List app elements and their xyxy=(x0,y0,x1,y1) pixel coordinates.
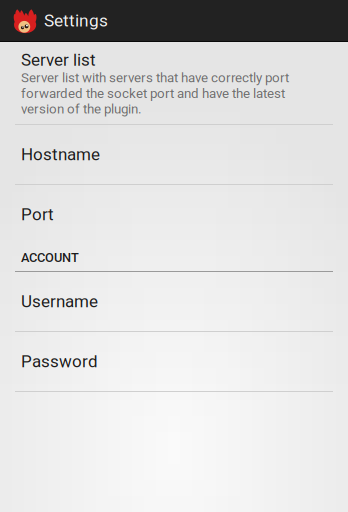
button[interactable]: Password xyxy=(0,332,348,391)
button[interactable]: Hostname xyxy=(0,125,348,184)
staticText: ACCOUNT xyxy=(21,250,79,265)
staticText: Port xyxy=(21,204,54,224)
button[interactable]: Server list xyxy=(0,42,348,124)
button[interactable]: Port xyxy=(0,185,348,244)
staticText: Settings xyxy=(44,10,108,31)
staticText: Server list xyxy=(21,50,96,70)
staticText: Server list with servers that have corre… xyxy=(21,70,289,117)
staticText: Hostname xyxy=(21,144,100,164)
button[interactable]: Username xyxy=(0,272,348,331)
staticText: Username xyxy=(21,291,98,311)
staticText: Password xyxy=(21,351,98,371)
